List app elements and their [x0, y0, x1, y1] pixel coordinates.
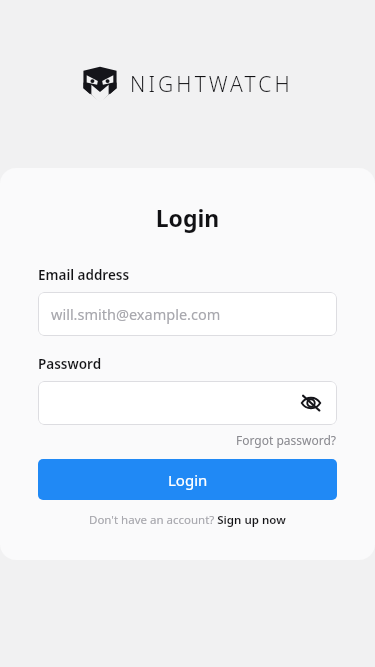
staticText: Email address — [38, 266, 130, 284]
button[interactable]: Login — [38, 459, 337, 500]
button[interactable]: Don't have an account? Sign up now — [89, 512, 286, 528]
staticText: will.smith@example.com — [51, 304, 221, 324]
button[interactable]: Forgot password? — [236, 432, 337, 448]
staticText: Login — [38, 202, 337, 233]
staticText: Password — [38, 355, 102, 373]
staticText: Don't have an account? Sign up now — [89, 512, 286, 528]
button[interactable]: Show password — [38, 381, 337, 425]
staticText: Forgot password? — [236, 432, 337, 448]
button[interactable]: Show password — [298, 390, 324, 416]
staticText: Login — [168, 470, 208, 490]
button[interactable]: will.smith@example.com — [38, 292, 337, 336]
staticText: NIGHTWATCH — [130, 70, 293, 99]
